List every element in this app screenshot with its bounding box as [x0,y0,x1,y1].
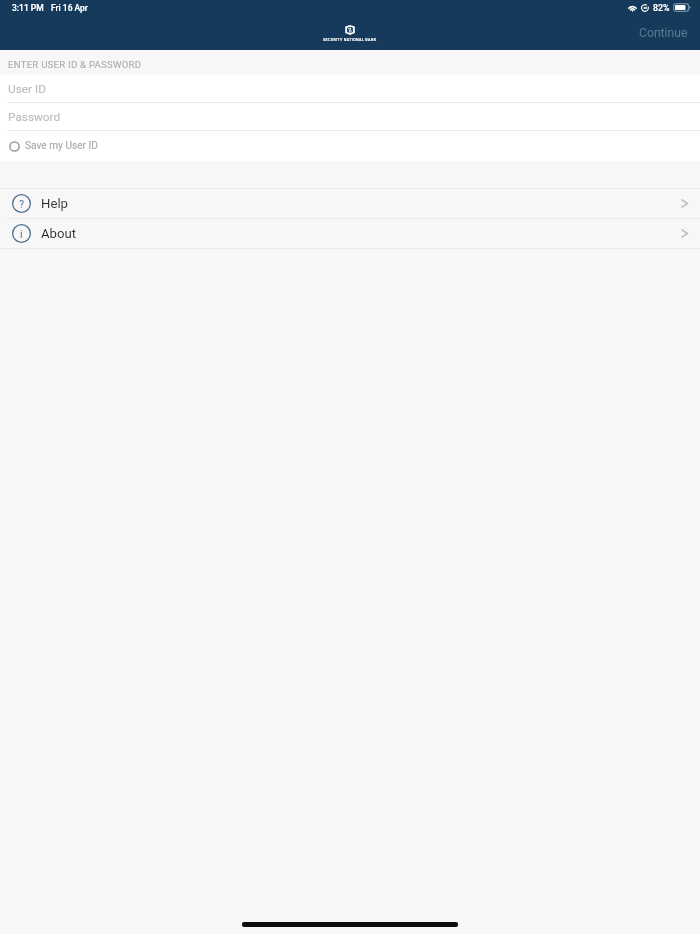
other: Location [641,4,649,12]
staticText: Password [8,110,61,124]
other: Battery 82 percent [673,3,692,12]
staticText: ? [19,198,25,210]
staticText: SECURITY NATIONAL BANK [323,38,377,42]
staticText: About [41,226,77,241]
staticText: 3:11 PM [12,3,44,13]
button[interactable]: User ID [0,75,700,102]
button[interactable]: i [0,219,700,248]
staticText: Fri 16 Apr [51,3,88,13]
staticText: ENTER USER ID & PASSWORD [8,59,142,70]
button[interactable]: Continue [625,21,700,45]
other: Wi-Fi [627,3,638,12]
button[interactable]: Password [0,103,700,130]
staticText: User ID [8,82,46,96]
staticText: 82% [653,3,670,13]
staticText: i [20,228,23,240]
staticText: Continue [639,26,688,40]
staticText: Help [41,196,69,211]
button[interactable]: Save my User ID [0,131,700,161]
button[interactable]: ? [0,189,700,218]
staticText: Save my User ID [25,140,98,152]
